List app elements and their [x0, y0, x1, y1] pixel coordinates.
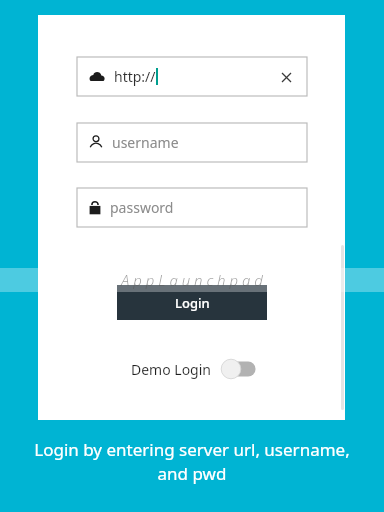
button[interactable]: password — [77, 188, 307, 227]
staticText: Login by entering server url, username, … — [18, 438, 366, 485]
button[interactable]: username — [77, 123, 307, 162]
staticText: password — [110, 198, 174, 217]
staticText: Demo Login — [131, 360, 211, 379]
staticText: A p p L a u n c h p a d — [121, 270, 263, 290]
button[interactable]: Clear — [277, 68, 295, 86]
button[interactable]: http:// — [77, 57, 307, 96]
button[interactable]: Demo Login — [131, 359, 257, 379]
staticText: Login — [175, 294, 210, 312]
staticText: http:// — [114, 67, 156, 86]
staticText: username — [112, 133, 179, 152]
button[interactable]: Demo Login toggle — [221, 359, 257, 379]
button[interactable]: Login — [117, 285, 267, 320]
